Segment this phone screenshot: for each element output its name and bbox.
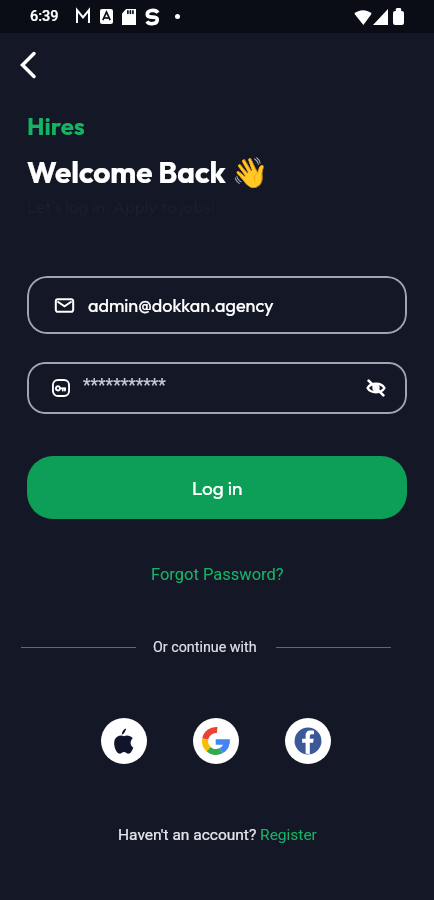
staticText: Welcome Back 👋 — [27, 153, 269, 190]
staticText: Haven't an account? Register — [118, 826, 317, 844]
button[interactable]: Log in — [27, 456, 407, 519]
button[interactable]: Forgot Password? — [141, 560, 294, 589]
button[interactable]: Haven't an account? Register — [110, 821, 325, 849]
staticText: Log in — [192, 476, 243, 500]
button[interactable]: admin@dokkan.agency — [27, 276, 407, 334]
staticText: Or continue with — [153, 639, 257, 656]
button[interactable]: Back — [8, 45, 48, 85]
staticText: 6:39 — [30, 8, 59, 25]
staticText: *********** — [83, 375, 166, 396]
button[interactable]: *********** — [27, 362, 407, 414]
button[interactable]: Sign in with Apple — [101, 718, 147, 764]
staticText: Forgot Password? — [151, 565, 284, 584]
button[interactable]: Sign in with Facebook — [285, 718, 331, 764]
staticText: Hires — [27, 111, 85, 141]
button[interactable]: Show password — [363, 375, 389, 401]
button[interactable]: Sign in with Google — [193, 718, 239, 764]
staticText: admin@dokkan.agency — [88, 294, 274, 317]
